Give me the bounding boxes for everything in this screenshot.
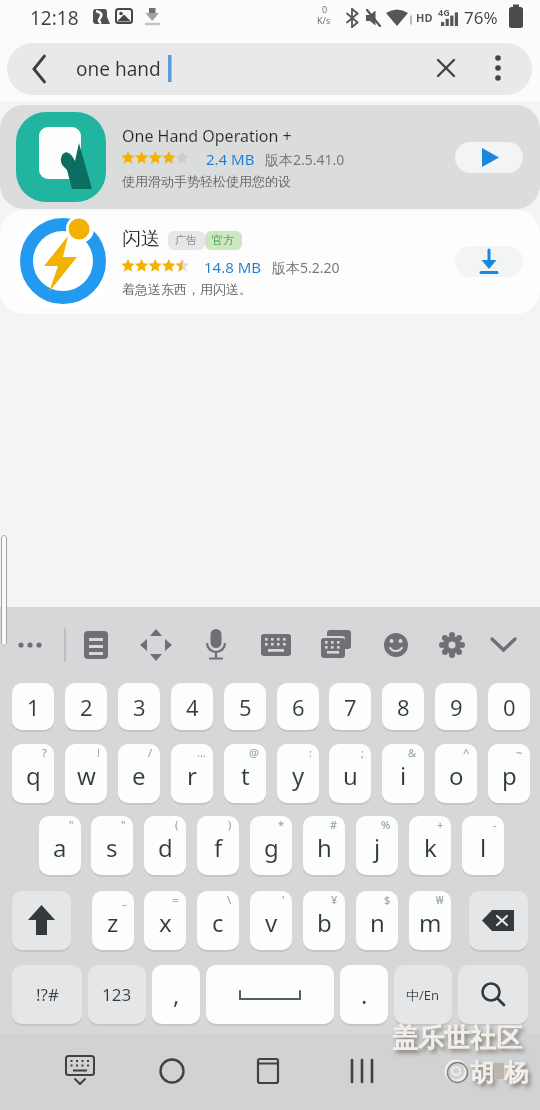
- staticText: ": [69, 817, 74, 832]
- button[interactable]: [430, 623, 474, 667]
- button[interactable]: [430, 52, 464, 86]
- staticText: ~: [516, 745, 523, 760]
- staticText: a: [53, 831, 67, 864]
- button[interactable]: ?: [12, 744, 54, 805]
- button[interactable]: 0: [488, 683, 530, 732]
- staticText: .: [361, 978, 368, 1011]
- button[interactable]: [254, 623, 298, 667]
- staticText: _: [122, 892, 127, 907]
- button[interactable]: [455, 142, 523, 173]
- staticText: g: [264, 831, 279, 864]
- button[interactable]: #: [303, 816, 345, 877]
- button[interactable]: !: [65, 744, 107, 805]
- button[interactable]: [8, 623, 52, 667]
- staticText: e: [132, 759, 146, 792]
- button[interactable]: [374, 623, 418, 667]
- staticText: o: [449, 759, 464, 792]
- button[interactable]: ;: [329, 744, 371, 805]
- button[interactable]: [7, 43, 532, 95]
- staticText: +: [437, 817, 444, 832]
- button[interactable]: [484, 52, 514, 86]
- button[interactable]: ': [250, 891, 292, 952]
- button[interactable]: [482, 623, 526, 667]
- button[interactable]: [134, 623, 178, 667]
- button[interactable]: [0, 210, 540, 314]
- button[interactable]: ": [39, 816, 81, 877]
- button[interactable]: %: [356, 816, 398, 877]
- button[interactable]: 1: [12, 683, 54, 732]
- staticText: $: [384, 892, 391, 907]
- staticText: ^: [463, 745, 470, 760]
- staticText: One Hand Operation +: [122, 125, 292, 147]
- button[interactable]: ^: [435, 744, 477, 805]
- button[interactable]: .: [340, 965, 388, 1026]
- button[interactable]: ~: [488, 744, 530, 805]
- staticText: s: [106, 831, 118, 864]
- button[interactable]: 6: [277, 683, 319, 732]
- staticText: 使用滑动手势轻松使用您的设: [122, 173, 291, 189]
- button[interactable]: [458, 965, 528, 1026]
- button[interactable]: +: [409, 816, 451, 877]
- staticText: f: [214, 831, 223, 864]
- button[interactable]: [142, 1044, 202, 1104]
- button[interactable]: [206, 965, 334, 1026]
- button[interactable]: \: [197, 891, 239, 952]
- button[interactable]: [0, 105, 540, 209]
- staticText: @: [249, 745, 259, 760]
- button[interactable]: [50, 1044, 110, 1104]
- button[interactable]: …: [171, 744, 213, 805]
- button[interactable]: _: [92, 891, 134, 952]
- button[interactable]: -: [462, 816, 504, 877]
- button[interactable]: $: [356, 891, 398, 952]
- button[interactable]: [332, 1044, 392, 1104]
- button[interactable]: 8: [382, 683, 424, 732]
- button[interactable]: [238, 1044, 298, 1104]
- button[interactable]: ): [197, 816, 239, 877]
- button[interactable]: [455, 246, 523, 277]
- staticText: 6: [292, 692, 305, 722]
- button[interactable]: @: [224, 744, 266, 805]
- staticText: !?#: [36, 983, 59, 1006]
- button[interactable]: [314, 623, 358, 667]
- button[interactable]: 5: [224, 683, 266, 732]
- staticText: 2: [80, 692, 93, 722]
- button[interactable]: [12, 891, 71, 952]
- button[interactable]: 9: [435, 683, 477, 732]
- button[interactable]: (: [144, 816, 186, 877]
- button[interactable]: ¥: [303, 891, 345, 952]
- staticText: y: [292, 759, 305, 792]
- button[interactable]: ,: [152, 965, 200, 1026]
- button[interactable]: *: [250, 816, 292, 877]
- staticText: *: [278, 817, 285, 832]
- staticText: ¥: [331, 892, 338, 907]
- button[interactable]: =: [144, 891, 186, 952]
- button[interactable]: ₩: [409, 891, 451, 952]
- button[interactable]: 2: [65, 683, 107, 732]
- staticText: h: [317, 831, 332, 864]
- staticText: 胡: [470, 1058, 494, 1088]
- staticText: \: [227, 892, 232, 907]
- staticText: 版本2.5.41.0: [265, 150, 345, 169]
- button[interactable]: [469, 891, 528, 952]
- staticText: k: [424, 831, 437, 864]
- button[interactable]: 4: [171, 683, 213, 732]
- staticText: %: [381, 817, 391, 832]
- button[interactable]: [74, 623, 118, 667]
- button[interactable]: !?#: [12, 965, 82, 1026]
- button[interactable]: &: [382, 744, 424, 805]
- button[interactable]: 3: [118, 683, 160, 732]
- button[interactable]: 7: [329, 683, 371, 732]
- staticText: ': [282, 892, 285, 907]
- staticText: d: [158, 831, 173, 864]
- staticText: 中/En: [406, 986, 440, 1004]
- button[interactable]: ": [91, 816, 133, 877]
- button[interactable]: [194, 623, 238, 667]
- staticText: l: [480, 831, 487, 864]
- button[interactable]: 中/En: [394, 965, 452, 1026]
- staticText: z: [107, 906, 119, 939]
- staticText: #: [330, 817, 338, 832]
- button[interactable]: /: [118, 744, 160, 805]
- staticText: 版本5.2.20: [272, 258, 340, 277]
- button[interactable]: 123: [88, 965, 146, 1026]
- button[interactable]: :: [277, 744, 319, 805]
